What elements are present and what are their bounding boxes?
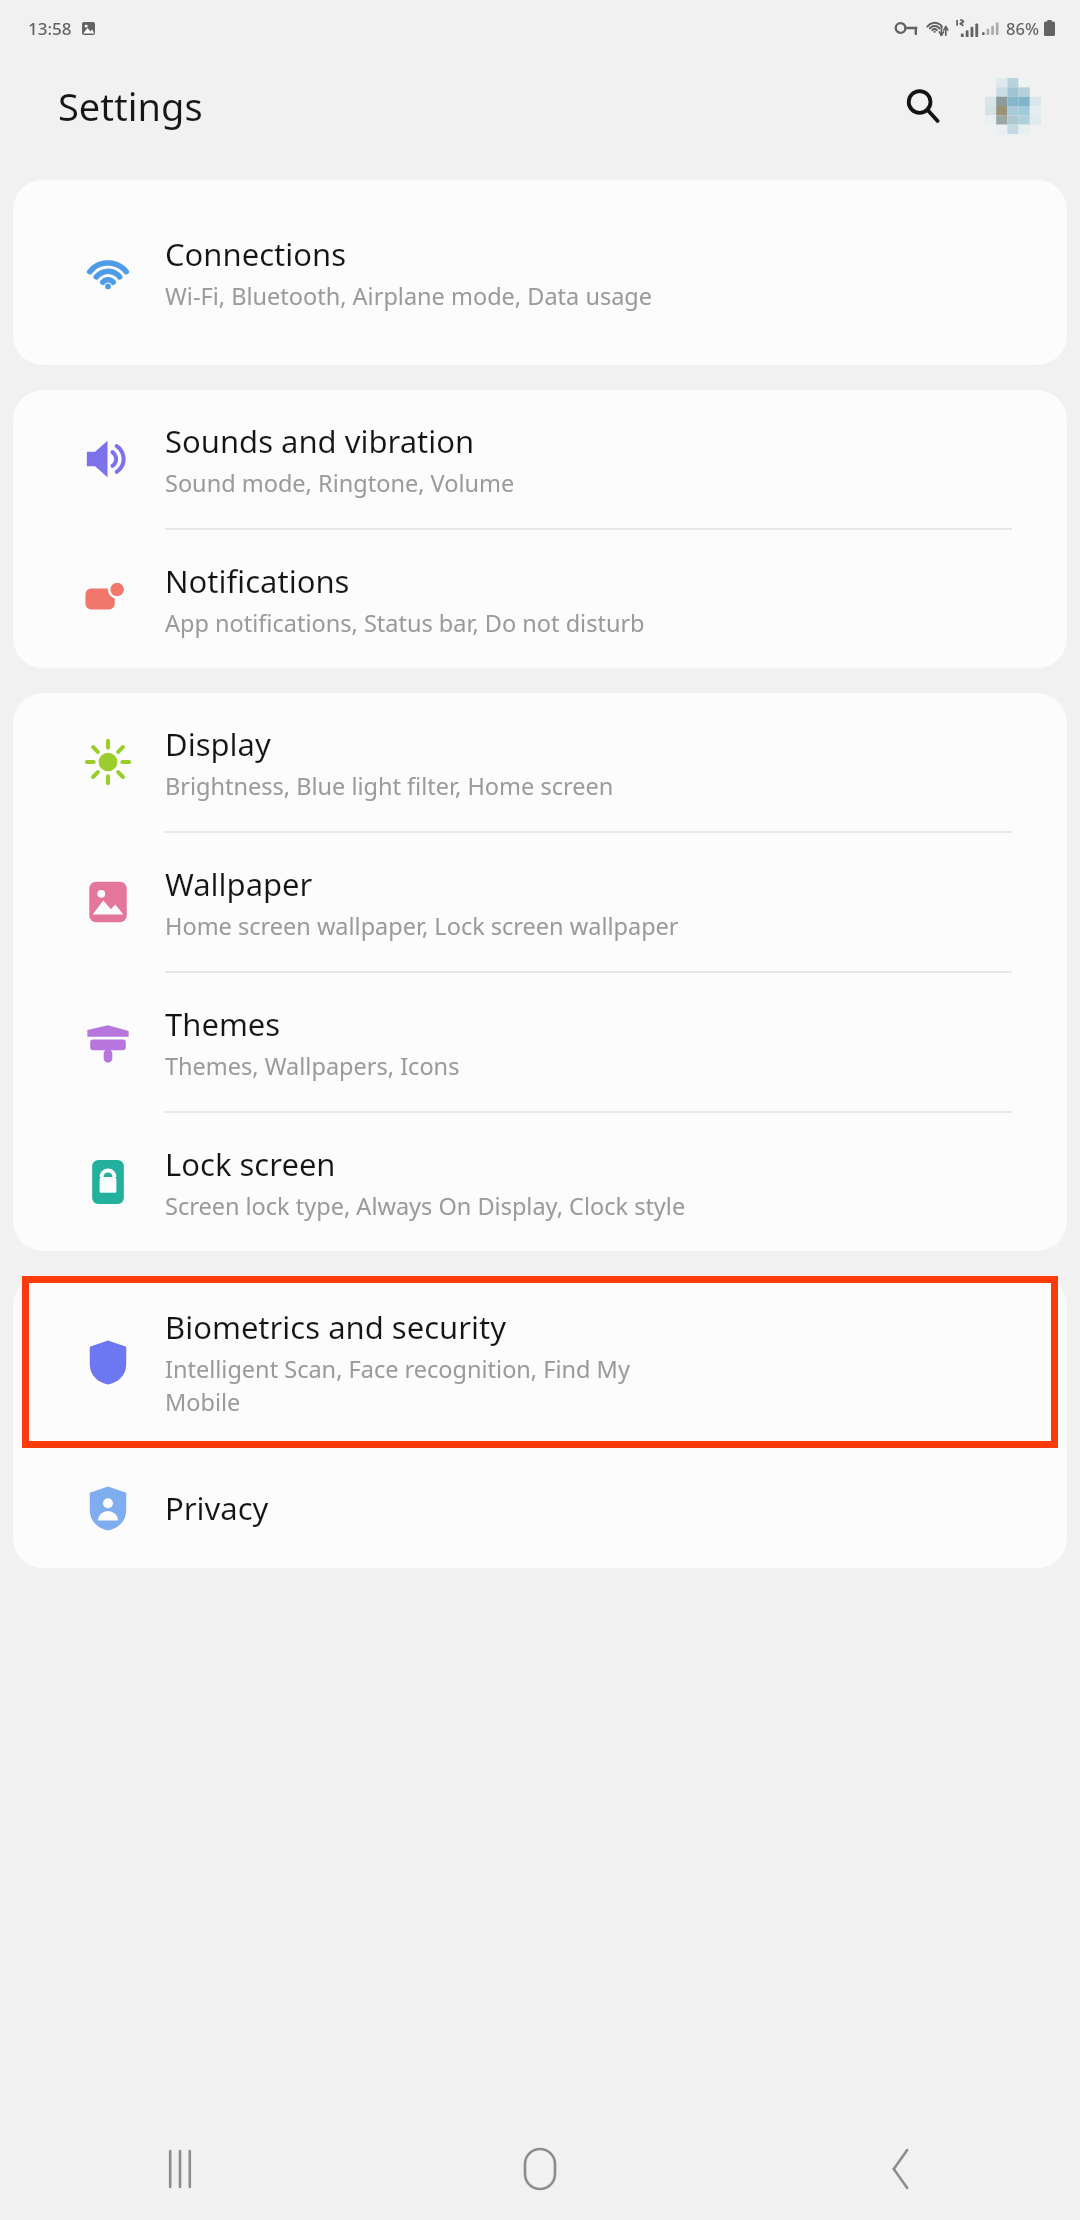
staticText: Sounds and vibration — [165, 420, 475, 462]
staticText: Display — [165, 723, 271, 765]
button[interactable]: Themes — [13, 973, 1067, 1111]
button[interactable]: Search — [890, 73, 956, 139]
button[interactable]: Biometrics and security — [13, 1276, 1067, 1448]
button[interactable]: Lock screen — [13, 1113, 1067, 1251]
staticText: Brightness, Blue light filter, Home scre… — [165, 770, 614, 802]
staticText: 13:58 — [28, 17, 72, 40]
staticText: Wi-Fi, Bluetooth, Airplane mode, Data us… — [165, 280, 653, 312]
staticText: Notifications — [165, 560, 350, 602]
staticText: Connections — [165, 233, 346, 275]
staticText: Intelligent Scan, Face recognition, Find… — [165, 1353, 630, 1418]
staticText: Wallpaper — [165, 863, 313, 905]
button[interactable]: Connections — [13, 180, 1067, 365]
button[interactable]: Notifications — [13, 530, 1067, 668]
staticText: Sound mode, Ringtone, Volume — [165, 467, 515, 499]
staticText: Settings — [58, 80, 203, 132]
button[interactable] — [22, 1276, 1058, 1448]
staticText: Lock screen — [165, 1143, 336, 1185]
staticText: Themes — [165, 1003, 281, 1045]
button[interactable]: Privacy — [13, 1448, 1067, 1568]
staticText: Home screen wallpaper, Lock screen wallp… — [165, 910, 679, 942]
button[interactable]: Wallpaper — [13, 833, 1067, 971]
button[interactable]: Account — [982, 75, 1044, 137]
staticText: 86% — [1006, 17, 1039, 39]
button[interactable]: Back — [720, 2118, 1080, 2220]
button[interactable]: Home — [360, 2118, 720, 2220]
staticText: Themes, Wallpapers, Icons — [165, 1050, 460, 1082]
button[interactable]: Sounds and vibration — [13, 390, 1067, 528]
staticText: Screen lock type, Always On Display, Clo… — [165, 1190, 686, 1222]
staticText: App notifications, Status bar, Do not di… — [165, 607, 645, 639]
button[interactable]: Recents — [0, 2118, 360, 2220]
staticText: Biometrics and security — [165, 1306, 506, 1348]
button[interactable]: Display — [13, 693, 1067, 831]
staticText: Privacy — [165, 1487, 269, 1529]
